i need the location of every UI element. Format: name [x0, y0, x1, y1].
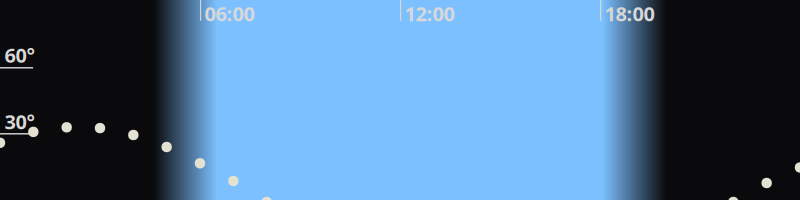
staticText: 60° — [5, 42, 35, 68]
staticText: 18:00 — [604, 0, 654, 27]
staticText: 12:00 — [404, 0, 454, 27]
staticText: 06:00 — [204, 0, 254, 27]
staticText: 30° — [5, 108, 35, 135]
